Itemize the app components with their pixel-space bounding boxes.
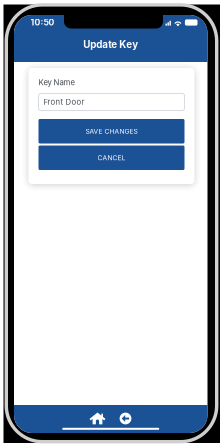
staticText: Front Door	[43, 97, 84, 107]
staticText: 10:50	[30, 17, 54, 28]
button[interactable]: CANCEL	[38, 145, 184, 170]
staticText: SAVE CHANGES	[85, 127, 137, 135]
staticText: CANCEL	[97, 154, 125, 162]
staticText: Key Name	[38, 78, 75, 87]
button[interactable]: Home	[86, 411, 108, 425]
button[interactable]: Back	[114, 411, 136, 425]
button[interactable]: SAVE CHANGES	[38, 119, 184, 143]
staticText: Update Key	[83, 39, 138, 50]
